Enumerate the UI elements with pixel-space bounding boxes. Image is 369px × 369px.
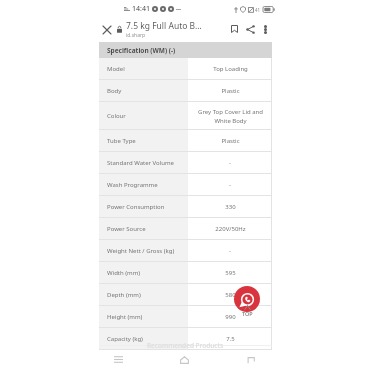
staticText: Plastic (221, 87, 240, 95)
button[interactable]: 220V/50Hz (188, 218, 272, 240)
button[interactable]: - (188, 152, 272, 174)
button[interactable]: More options (258, 22, 272, 36)
button[interactable]: Home (177, 352, 192, 367)
button[interactable]: 990 (188, 306, 272, 328)
staticText: 220V/50Hz (215, 225, 246, 233)
button[interactable]: Specification (WM) (-) (99, 42, 272, 58)
staticText: Depth (mm) (107, 291, 141, 299)
staticText: Recommended Products (147, 341, 224, 350)
staticText: Weight Nett / Gross (kg) (107, 247, 175, 255)
button[interactable]: Grey Top Cover Lid and White Body (188, 102, 272, 130)
staticText: 14:41 (132, 4, 150, 14)
staticText: Height (mm) (107, 313, 143, 321)
staticText: Power Consumption (107, 203, 165, 211)
staticText: 580 (225, 291, 236, 299)
button[interactable]: Model (99, 58, 188, 80)
staticText: - (229, 247, 231, 255)
button[interactable]: Tube Type (99, 130, 188, 152)
button[interactable]: Scroll to top (235, 305, 259, 317)
button[interactable]: Weight Nett / Gross (kg) (99, 240, 188, 262)
button[interactable]: Plastic (188, 130, 272, 152)
button[interactable]: Back (243, 352, 258, 367)
staticText: Tube Type (107, 137, 136, 145)
staticText: - (229, 181, 231, 189)
button[interactable]: Depth (mm) (99, 284, 188, 306)
button[interactable]: Plastic (188, 80, 272, 102)
staticText: Specification (WM) (-) (107, 46, 176, 55)
button[interactable]: Close (99, 22, 114, 37)
button[interactable]: Bookmark (227, 22, 241, 36)
staticText: 990 (225, 313, 236, 321)
button[interactable]: Capacity (kg) (99, 328, 188, 350)
staticText: TOP (242, 310, 253, 317)
staticText: - (229, 159, 231, 167)
button[interactable]: Width (mm) (99, 262, 188, 284)
staticText: 595 (225, 269, 236, 277)
button[interactable]: 595 (188, 262, 272, 284)
staticText: 7.5 (226, 335, 235, 343)
button[interactable]: Standard Water Volume (99, 152, 188, 174)
button[interactable]: 330 (188, 196, 272, 218)
staticText: Model (107, 65, 125, 73)
staticText: 41 (255, 7, 261, 13)
staticText: Power Source (107, 225, 146, 233)
staticText: 7.5 kg Full Auto B… (126, 20, 202, 32)
button[interactable]: Power Source (99, 218, 188, 240)
staticText: Standard Water Volume (107, 159, 174, 167)
button[interactable]: Share (243, 22, 257, 36)
button[interactable]: Height (mm) (99, 306, 188, 328)
staticText: id.sharp (126, 32, 146, 39)
staticText: Wash Programme (107, 181, 158, 189)
button[interactable]: 7.5 (188, 328, 272, 350)
staticText: Colour (107, 112, 126, 120)
staticText: 330 (225, 203, 236, 211)
staticText: Plastic (221, 137, 240, 145)
staticText: Capacity (kg) (107, 335, 143, 343)
staticText: Grey Top Cover Lid and White Body (198, 108, 263, 124)
button[interactable]: Wash Programme (99, 174, 188, 196)
button[interactable]: Top Loading (188, 58, 272, 80)
button[interactable]: Body (99, 80, 188, 102)
button[interactable]: - (188, 174, 272, 196)
button[interactable]: - (188, 240, 272, 262)
button[interactable]: 580 (188, 284, 272, 306)
staticText: Top Loading (213, 65, 248, 73)
button[interactable]: Power Consumption (99, 196, 188, 218)
staticText: Body (107, 87, 122, 95)
button[interactable]: Chat on WhatsApp (234, 286, 260, 312)
button[interactable]: Recents (111, 352, 126, 367)
button[interactable]: 7.5 kg Full Auto B… (126, 20, 225, 39)
button[interactable]: Colour (99, 102, 188, 130)
staticText: Width (mm) (107, 269, 141, 277)
